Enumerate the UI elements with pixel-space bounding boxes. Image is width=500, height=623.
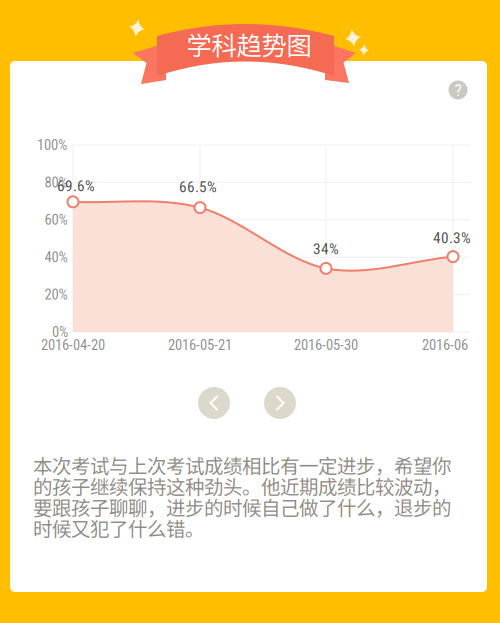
staticText: 2016-04-20 (41, 336, 105, 354)
staticText: 100% (37, 136, 67, 154)
button[interactable]: Help (445, 77, 471, 103)
button[interactable]: Previous (196, 385, 232, 421)
staticText: 40% (44, 249, 67, 266)
staticText: 0% (52, 323, 68, 341)
staticText: 本次考试与上次考试成绩相比有一定进步，希望你 (33, 451, 451, 479)
staticText: 要跟孩子聊聊，进步的时候自己做了什么，退步的 (33, 493, 451, 521)
staticText: ? (454, 80, 461, 100)
staticText: 34% (313, 240, 339, 258)
staticText: 学科趋势图 (186, 26, 311, 62)
staticText: 的孩子继续保持这种劲头。他近期成绩比较波动， (33, 472, 451, 500)
staticText: 时候又犯了什么错。 (33, 514, 204, 542)
staticText: 66.5% (179, 178, 217, 196)
staticText: 40.3% (433, 229, 471, 247)
staticText: 60% (44, 211, 67, 228)
staticText: 2016-06 (422, 336, 468, 354)
staticText: 69.6% (57, 177, 95, 195)
staticText: 80% (44, 174, 67, 191)
button[interactable]: Next (262, 385, 298, 421)
staticText: 20% (44, 286, 67, 303)
staticText: 2016-05-21 (168, 336, 232, 354)
staticText: 2016-05-30 (294, 336, 358, 354)
